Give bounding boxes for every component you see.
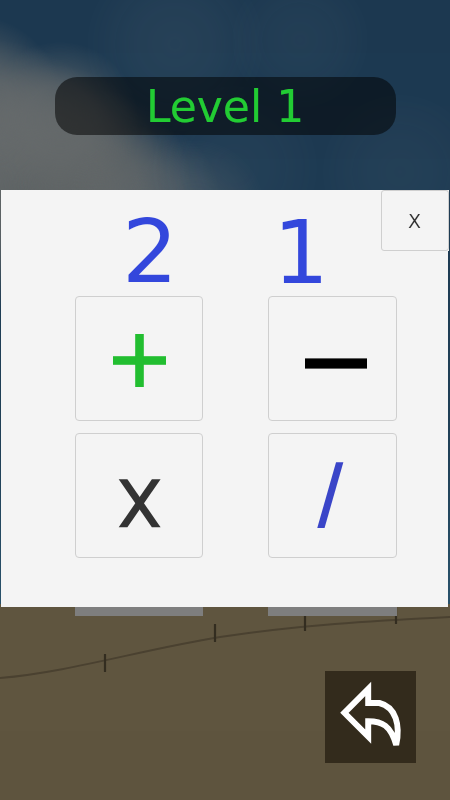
staticText: 1 <box>273 201 329 296</box>
staticText: X <box>408 210 422 232</box>
staticText: Level 1 <box>146 81 305 132</box>
button[interactable]: Plus <box>75 296 203 421</box>
button[interactable]: Minus <box>268 296 397 421</box>
staticText: 2 <box>122 200 178 295</box>
button[interactable]: Divide <box>268 433 397 558</box>
button[interactable]: Level 1 <box>55 77 396 135</box>
button[interactable]: Back <box>325 671 416 763</box>
button[interactable]: Multiply <box>75 433 203 558</box>
button[interactable]: Close <box>381 190 449 251</box>
